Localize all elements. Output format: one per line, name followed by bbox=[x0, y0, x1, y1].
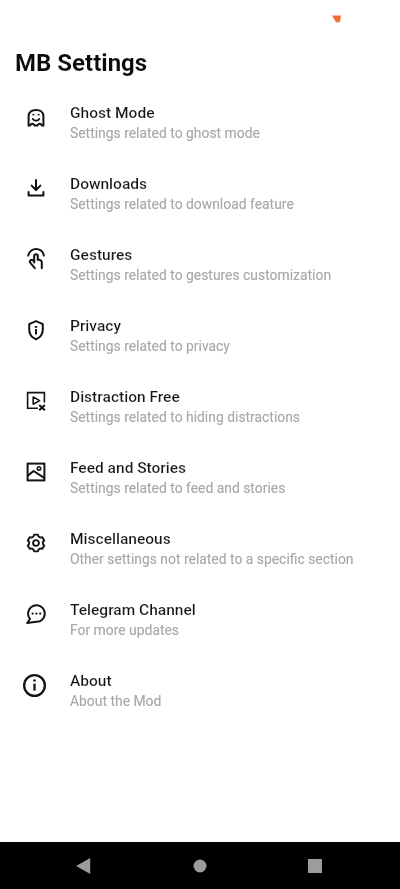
button[interactable]: Feed and Stories bbox=[0, 440, 400, 511]
staticText: Other settings not related to a specific… bbox=[70, 551, 354, 567]
button[interactable]: About bbox=[0, 653, 400, 724]
staticText: About the Mod bbox=[70, 693, 162, 709]
button[interactable]: Downloads bbox=[0, 156, 400, 227]
staticText: About bbox=[70, 672, 112, 690]
button[interactable]: Ghost Mode bbox=[0, 85, 400, 156]
staticText: Telegram Channel bbox=[70, 601, 196, 619]
staticText: Settings related to gestures customizati… bbox=[70, 267, 332, 283]
staticText: For more updates bbox=[70, 622, 180, 638]
button[interactable]: Gestures bbox=[0, 227, 400, 298]
staticText: Miscellaneous bbox=[70, 530, 171, 548]
staticText: Gestures bbox=[70, 246, 133, 264]
staticText: Privacy bbox=[70, 317, 121, 335]
staticText: Downloads bbox=[70, 175, 148, 193]
button[interactable]: Telegram Channel bbox=[0, 582, 400, 653]
staticText: Settings related to privacy bbox=[70, 338, 230, 354]
staticText: Ghost Mode bbox=[70, 104, 155, 122]
staticText: MB Settings bbox=[15, 49, 148, 77]
button[interactable]: Miscellaneous bbox=[0, 511, 400, 582]
button[interactable]: Distraction Free bbox=[0, 369, 400, 440]
staticText: Settings related to download feature bbox=[70, 196, 294, 212]
button[interactable]: Privacy bbox=[0, 298, 400, 369]
button[interactable]: Back bbox=[63, 846, 103, 886]
staticText: Settings related to ghost mode bbox=[70, 125, 260, 141]
staticText: Distraction Free bbox=[70, 388, 180, 406]
button[interactable]: Recent apps bbox=[295, 846, 335, 886]
staticText: Feed and Stories bbox=[70, 459, 187, 477]
staticText: Settings related to feed and stories bbox=[70, 480, 286, 496]
staticText: Settings related to hiding distractions bbox=[70, 409, 301, 425]
button[interactable]: Home bbox=[180, 846, 220, 886]
